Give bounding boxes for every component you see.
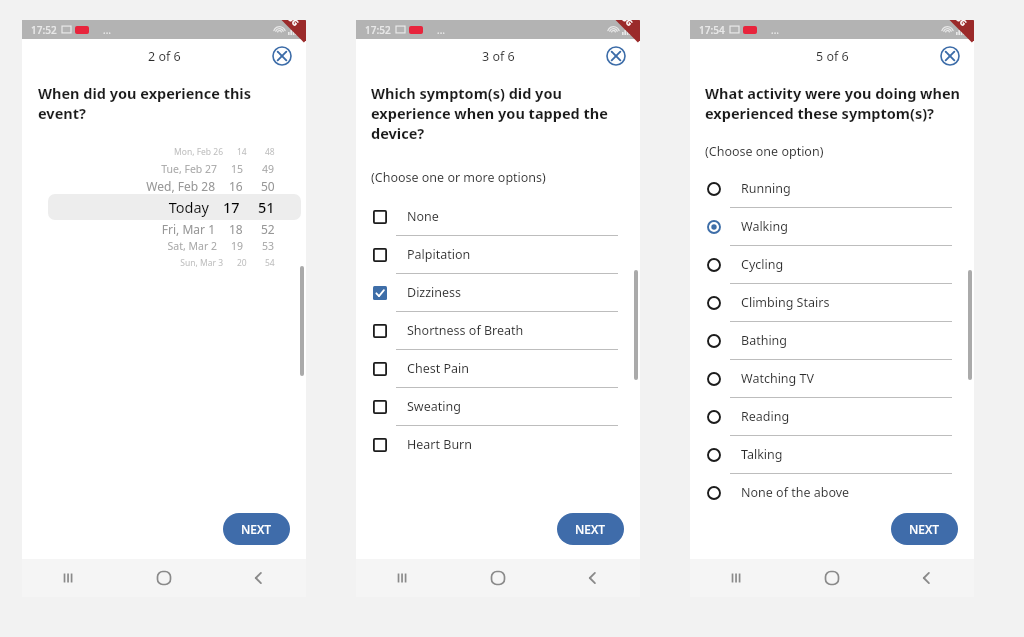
- button[interactable]: Tue, Feb 27: [48, 162, 301, 176]
- button[interactable]: Palpitation: [356, 236, 640, 274]
- staticText: Fri, Mar 1: [48, 221, 215, 237]
- button[interactable]: Cycling: [690, 246, 974, 284]
- staticText: None of the above: [741, 484, 850, 501]
- button[interactable]: Climbing Stairs: [690, 284, 974, 322]
- button[interactable]: Recents: [356, 559, 450, 597]
- staticText: 17:54: [699, 23, 725, 37]
- button[interactable]: Mon, Feb 26: [48, 146, 301, 158]
- button[interactable]: Heart Burn: [356, 426, 640, 463]
- staticText: Running: [741, 180, 791, 197]
- button[interactable]: Today: [48, 197, 301, 217]
- staticText: 15: [231, 162, 244, 176]
- button[interactable]: Sweating: [356, 388, 640, 426]
- staticText: Shortness of Breath: [407, 322, 524, 339]
- staticText: 48: [265, 146, 275, 158]
- staticText: Sat, Mar 2: [48, 239, 217, 253]
- button[interactable]: None of the above: [690, 474, 974, 511]
- staticText: ...: [771, 23, 780, 37]
- staticText: 18: [229, 221, 243, 237]
- staticText: Palpitation: [407, 246, 471, 263]
- button[interactable]: Home: [450, 559, 545, 597]
- staticText: 50: [261, 178, 275, 194]
- staticText: NEXT: [575, 521, 606, 537]
- button[interactable]: NEXT: [891, 513, 958, 545]
- staticText: Dizziness: [407, 284, 462, 301]
- staticText: What activity were you doing when experi…: [705, 83, 960, 123]
- staticText: DEBUG: [608, 20, 636, 28]
- staticText: NEXT: [241, 521, 272, 537]
- staticText: 49: [262, 162, 275, 176]
- button[interactable]: Shortness of Breath: [356, 312, 640, 350]
- button[interactable]: Close: [606, 46, 626, 66]
- button[interactable]: Recents: [22, 559, 116, 597]
- staticText: 16: [229, 178, 243, 194]
- staticText: 14: [237, 146, 247, 158]
- button[interactable]: Close: [272, 46, 292, 66]
- button[interactable]: Bathing: [690, 322, 974, 360]
- staticText: (Choose one option): [705, 143, 824, 160]
- staticText: 52: [261, 221, 275, 237]
- staticText: Which symptom(s) did you experience when…: [371, 83, 618, 143]
- button[interactable]: Watching TV: [690, 360, 974, 398]
- staticText: Cycling: [741, 256, 784, 273]
- button[interactable]: Close: [940, 46, 960, 66]
- staticText: 2 of 6: [148, 48, 181, 65]
- staticText: 54: [265, 257, 275, 269]
- button[interactable]: Dizziness: [356, 274, 640, 312]
- staticText: 17:52: [365, 23, 391, 37]
- button[interactable]: Sat, Mar 2: [48, 239, 301, 253]
- staticText: 17:52: [31, 23, 57, 37]
- staticText: Mon, Feb 26: [48, 146, 223, 158]
- button[interactable]: Recents: [690, 559, 784, 597]
- staticText: Climbing Stairs: [741, 294, 830, 311]
- staticText: Watching TV: [741, 370, 814, 387]
- button[interactable]: Reading: [690, 398, 974, 436]
- staticText: Wed, Feb 28: [48, 178, 215, 194]
- staticText: DEBUG: [274, 20, 302, 28]
- staticText: Chest Pain: [407, 360, 469, 377]
- staticText: Walking: [741, 218, 788, 235]
- staticText: (Choose one or more options): [371, 169, 546, 186]
- staticText: Heart Burn: [407, 436, 472, 453]
- staticText: 3 of 6: [482, 48, 515, 65]
- button[interactable]: Back: [879, 559, 974, 597]
- button[interactable]: Wed, Feb 28: [48, 178, 301, 194]
- staticText: None: [407, 208, 439, 225]
- button[interactable]: Back: [545, 559, 640, 597]
- staticText: 17: [223, 197, 240, 217]
- button[interactable]: Home: [116, 559, 211, 597]
- staticText: 51: [258, 197, 275, 217]
- staticText: Today: [48, 197, 209, 217]
- staticText: NEXT: [909, 521, 940, 537]
- staticText: ...: [103, 23, 112, 37]
- button[interactable]: Walking: [690, 208, 974, 246]
- staticText: Tue, Feb 27: [48, 162, 217, 176]
- button[interactable]: NEXT: [557, 513, 624, 545]
- staticText: Talking: [741, 446, 783, 463]
- staticText: 19: [231, 239, 244, 253]
- button[interactable]: NEXT: [223, 513, 290, 545]
- staticText: Sweating: [407, 398, 461, 415]
- button[interactable]: Running: [690, 170, 974, 208]
- button[interactable]: Chest Pain: [356, 350, 640, 388]
- staticText: Reading: [741, 408, 790, 425]
- staticText: 20: [237, 257, 247, 269]
- staticText: 5 of 6: [816, 48, 849, 65]
- staticText: When did you experience this event?: [38, 83, 292, 123]
- staticText: 53: [262, 239, 275, 253]
- staticText: Bathing: [741, 332, 788, 349]
- button[interactable]: Back: [211, 559, 306, 597]
- staticText: DEBUG: [942, 20, 970, 28]
- button[interactable]: Sun, Mar 3: [48, 257, 301, 269]
- button[interactable]: Fri, Mar 1: [48, 221, 301, 237]
- button[interactable]: Home: [784, 559, 879, 597]
- button[interactable]: Talking: [690, 436, 974, 474]
- staticText: ...: [437, 23, 446, 37]
- button[interactable]: None: [356, 198, 640, 236]
- staticText: Sun, Mar 3: [48, 257, 223, 269]
